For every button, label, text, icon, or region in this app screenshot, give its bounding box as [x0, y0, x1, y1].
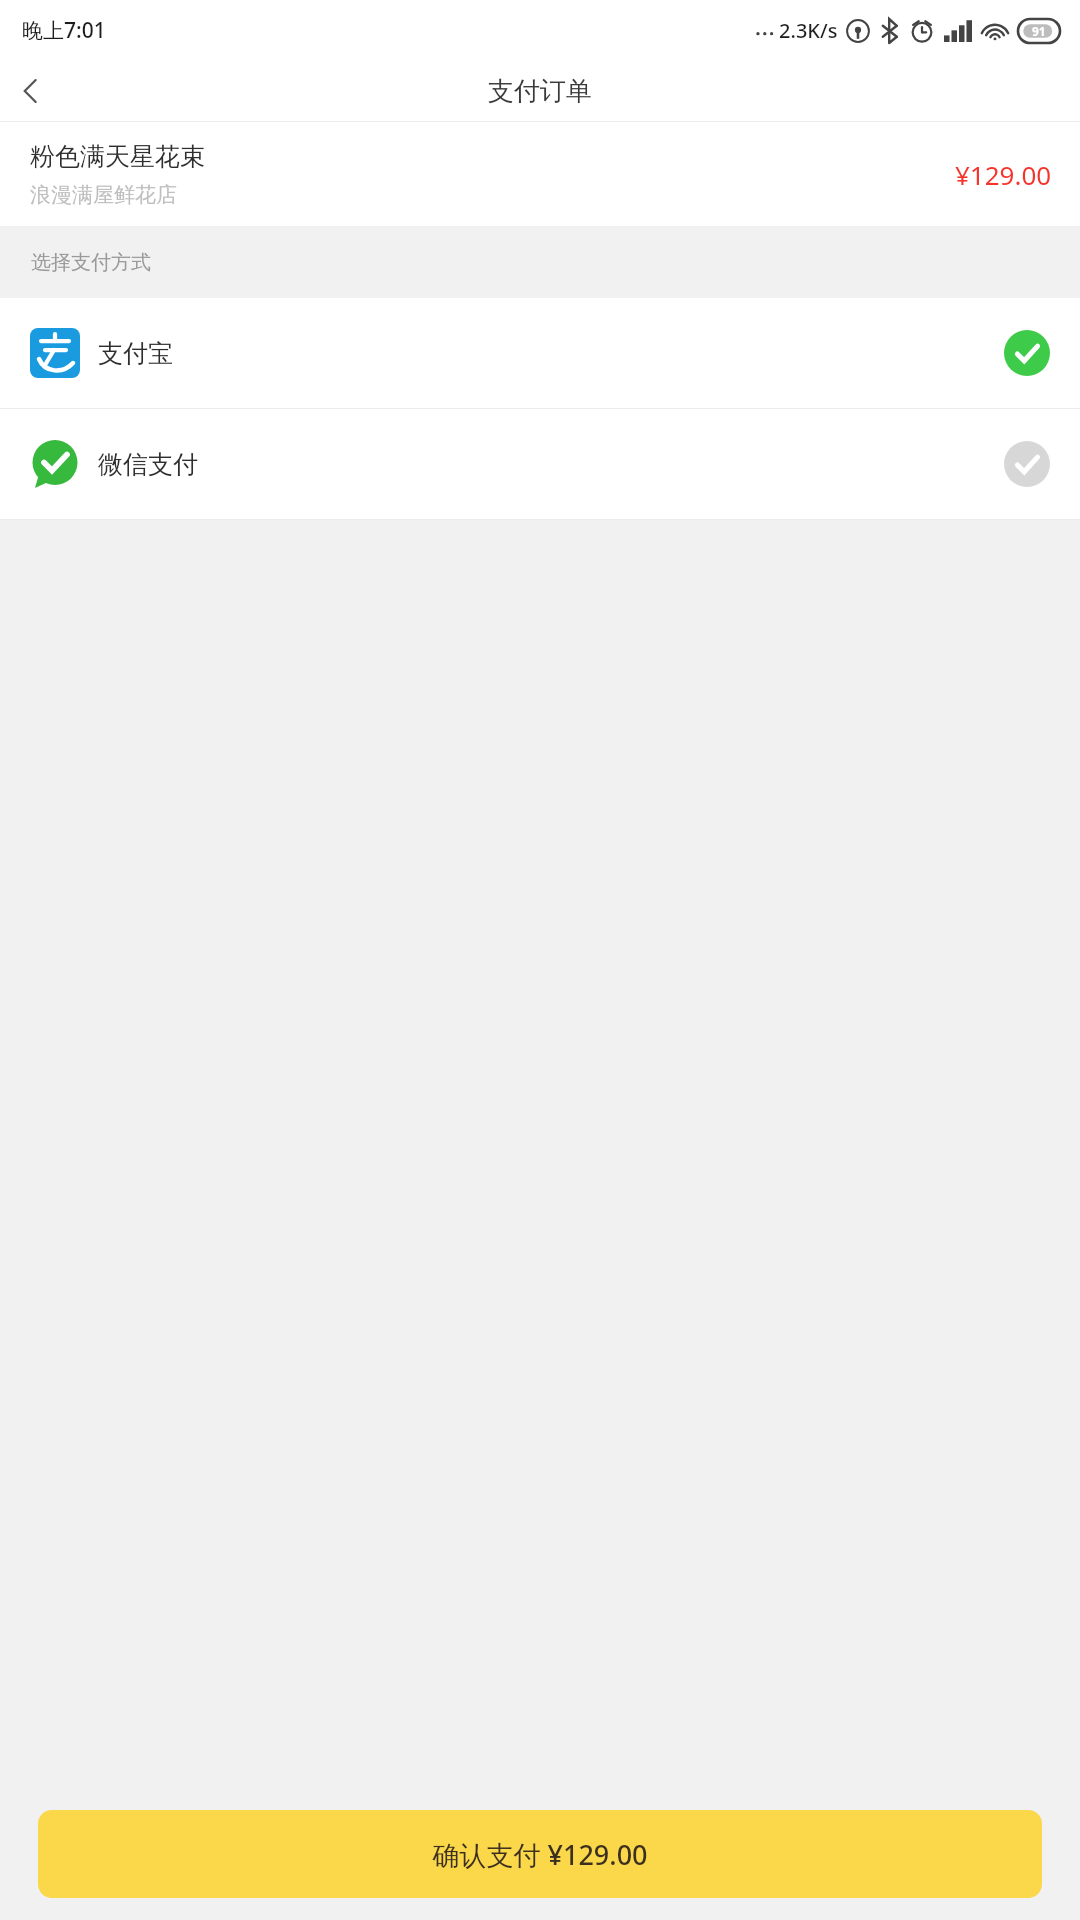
button[interactable]: 确认支付 ¥129.00 — [38, 1810, 1042, 1898]
staticText: 选择支付方式 — [31, 250, 151, 275]
button[interactable]: 支付宝 — [0, 298, 1080, 408]
staticText: 2.3K/s — [779, 17, 838, 44]
button[interactable]: 微信支付 — [0, 409, 1080, 519]
staticText: 支付订单 — [488, 75, 592, 108]
staticText: 晚上7:01 — [22, 16, 106, 45]
staticText: 支付宝 — [98, 338, 173, 369]
staticText: ¥129.00 — [955, 157, 1052, 192]
staticText: 浪漫满屋鲜花店 — [30, 182, 177, 208]
button[interactable]: 返回 — [0, 60, 62, 122]
staticText: 微信支付 — [98, 449, 198, 480]
staticText: 粉色满天星花束 — [30, 141, 205, 172]
staticText: 确认支付 ¥129.00 — [432, 1836, 648, 1873]
button[interactable]: 粉色满天星花束 — [0, 122, 1080, 226]
staticText: 91 — [1032, 23, 1046, 39]
